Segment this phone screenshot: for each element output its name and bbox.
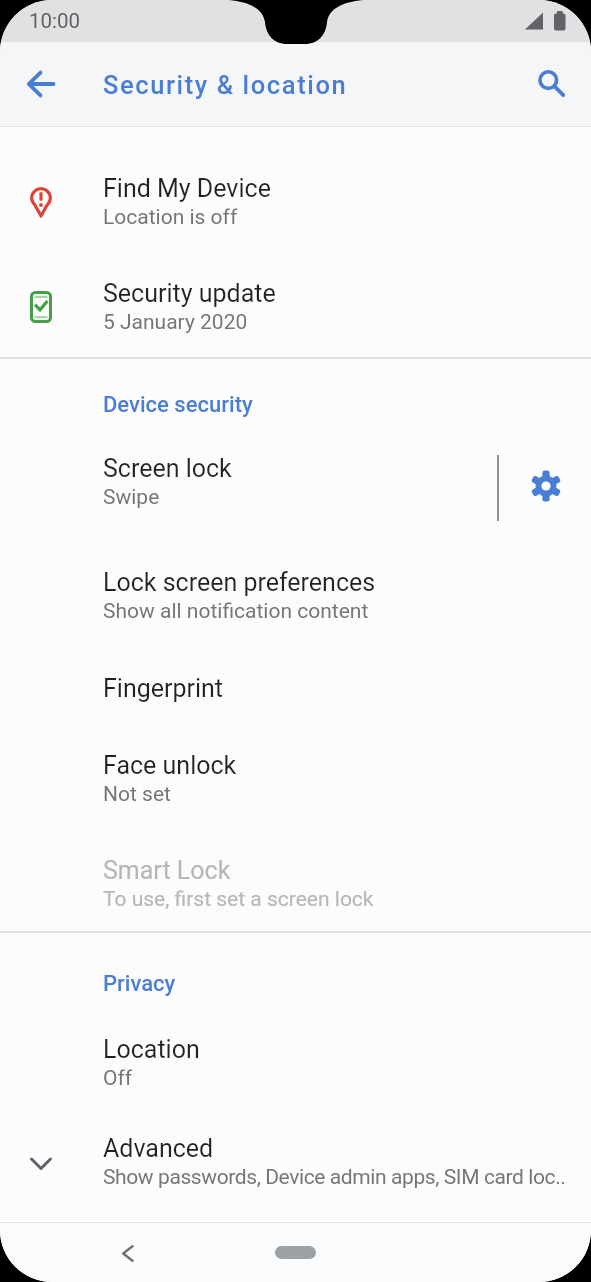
button[interactable]: Location [0, 1035, 591, 1091]
button[interactable] [16, 59, 66, 109]
staticText: 5 January 2020 [103, 310, 248, 335]
staticText: Smart Lock [103, 856, 231, 885]
staticText: Face unlock [103, 751, 237, 780]
staticText: Device security [103, 392, 253, 418]
button[interactable] [275, 1246, 316, 1259]
staticText: Security & location [103, 70, 348, 100]
button[interactable]: Find My Device [0, 174, 591, 230]
staticText: 10:00 [29, 9, 81, 33]
button[interactable]: Face unlock [0, 751, 591, 807]
staticText: Find My Device [103, 174, 271, 203]
staticText: Not set [103, 782, 171, 807]
button[interactable]: Fingerprint [0, 674, 591, 703]
button[interactable]: Security update [0, 279, 591, 335]
staticText: To use, first set a screen lock [103, 887, 374, 912]
staticText: Lock screen preferences [103, 568, 376, 597]
staticText: Show all notification content [103, 599, 369, 624]
staticText: Off [103, 1066, 133, 1091]
button[interactable]: Advanced [0, 1134, 591, 1190]
button[interactable]: Smart Lock [0, 856, 591, 912]
staticText: Show passwords, Device admin apps, SIM c… [103, 1165, 566, 1190]
button[interactable] [527, 59, 577, 109]
staticText: Location is off [103, 205, 238, 230]
staticText: Advanced [103, 1134, 214, 1163]
button[interactable] [522, 462, 570, 510]
staticText: Privacy [103, 971, 176, 997]
staticText: Security update [103, 279, 276, 308]
button[interactable] [0, 454, 497, 520]
button[interactable] [104, 1229, 152, 1277]
staticText: Screen lock [103, 454, 232, 483]
button[interactable]: Lock screen preferences [0, 568, 591, 624]
staticText: Location [103, 1035, 200, 1064]
staticText: Fingerprint [103, 674, 224, 703]
staticText: Swipe [103, 485, 160, 510]
